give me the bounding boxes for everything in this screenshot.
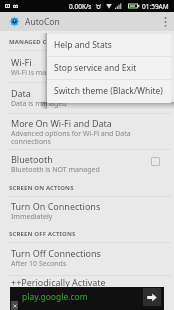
button[interactable]: Close ad (11, 301, 18, 310)
staticText: ++Periodically Activate (11, 276, 106, 288)
button[interactable]: More options (157, 12, 173, 31)
staticText: Data is managed (11, 99, 67, 109)
staticText: SCREEN OFF ACTIONS (9, 230, 76, 238)
staticText: Wi-Fi (11, 56, 32, 68)
staticText: Bluetooth (11, 153, 53, 165)
button[interactable]: ++Periodically Activate (0, 276, 174, 296)
staticText: 0.00K/s (69, 2, 92, 11)
staticText: Stop service and Exit (54, 62, 137, 74)
staticText: Turn On Connections (11, 200, 101, 212)
button[interactable]: play.google.com (10, 287, 164, 310)
staticText: Wi-Fi is managed (11, 68, 68, 78)
button[interactable]: Data (0, 83, 174, 114)
staticText: More On Wi-Fi and Data (11, 117, 112, 129)
button[interactable]: More On Wi-Fi and Data (0, 114, 174, 150)
staticText: Bluetooth is NOT managed (11, 165, 100, 175)
button[interactable]: Wi-Fi (0, 51, 174, 83)
button[interactable]: Turn On Connections (0, 197, 174, 226)
button[interactable]: Turn Off Connections (0, 243, 174, 276)
staticText: MANAGED CONNECTIONS (9, 38, 89, 46)
button[interactable]: Open ad (143, 288, 161, 306)
staticText: play.google.com (22, 291, 88, 303)
staticText: Immediately (11, 212, 53, 222)
button[interactable]: Switch theme (Black/White) (47, 80, 171, 102)
staticText: Advanced options for Wi-Fi and Data conn… (11, 129, 168, 146)
button[interactable]: Help and Stats (47, 34, 171, 56)
staticText: AutoCon (25, 16, 60, 28)
button[interactable]: Bluetooth (0, 150, 174, 180)
staticText: SCREEN ON ACTIONS (9, 184, 74, 192)
staticText: Help and Stats (54, 39, 112, 51)
staticText: 01:59AM (142, 2, 169, 11)
staticText: Turn Off Connections (11, 247, 101, 259)
staticText: Data (11, 87, 31, 99)
staticText: After 10 Seconds (11, 259, 67, 269)
staticText: Switch theme (Black/White) (54, 85, 163, 97)
button[interactable]: Stop service and Exit (47, 57, 171, 79)
